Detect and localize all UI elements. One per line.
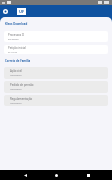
staticText: Processos II xyxy=(8,33,24,37)
button[interactable]: Back xyxy=(18,170,32,180)
staticText: Kleos Download xyxy=(5,22,28,26)
staticText: Regulamentação xyxy=(10,97,33,101)
staticText: Mensagem xyxy=(10,74,22,77)
staticText: Mensagem xyxy=(10,88,22,91)
button[interactable]: Regulamentação xyxy=(4,95,108,106)
button[interactable]: Kleos Download xyxy=(5,21,112,26)
staticText: Pedido de pensão xyxy=(10,83,34,87)
button[interactable]: Home xyxy=(49,170,63,180)
button[interactable]: Logo xyxy=(17,8,26,15)
staticText: Ação civil xyxy=(10,69,23,73)
staticText: 01-10-22 xyxy=(8,51,17,54)
staticText: Em aberto xyxy=(8,38,19,41)
button[interactable]: Petição inicial xyxy=(4,45,108,54)
button[interactable]: Correio de Família xyxy=(5,58,112,63)
button[interactable]: Account xyxy=(1,7,10,16)
staticText: Petição inicial xyxy=(8,46,26,50)
staticText: UF xyxy=(19,9,25,14)
staticText: Correio de Família xyxy=(5,59,31,63)
button[interactable]: Processos II xyxy=(4,31,108,42)
button[interactable]: Ação civil xyxy=(4,67,108,79)
staticText: Mensagem xyxy=(10,102,22,105)
button[interactable]: Recent apps xyxy=(81,170,95,180)
button[interactable]: Pedido de pensão xyxy=(4,81,108,93)
